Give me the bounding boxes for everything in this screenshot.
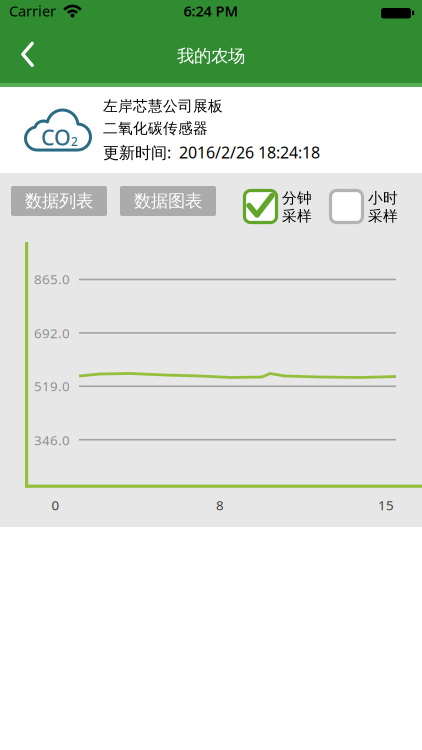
button[interactable]: 数据列表 [11,186,107,216]
button[interactable]: 小时 [330,190,402,223]
staticText: 519.0 [34,377,70,395]
staticText: 865.0 [34,270,70,288]
staticText: 我的农场 [177,45,245,67]
button[interactable]: 数据图表 [120,186,216,216]
staticText: 小时 [368,189,398,207]
staticText: 采样 [368,207,398,225]
staticText: 分钟 [282,189,312,207]
staticText: 6:24 PM [183,1,238,20]
staticText: 15 [378,496,394,514]
staticText: 数据列表 [25,190,93,212]
button[interactable]: Back [0,26,54,83]
staticText: 8 [216,496,224,514]
staticText: 数据图表 [134,190,202,212]
staticText: 346.0 [34,431,70,449]
staticText: 更新时间: 2016/2/26 18:24:18 [103,142,320,163]
staticText: 采样 [282,207,312,225]
staticText: 0 [51,496,59,514]
staticText: Carrier [9,1,56,20]
staticText: 2 [71,133,78,149]
button[interactable]: 分钟 [244,190,316,223]
staticText: 左岸芯慧公司展板 [103,97,223,115]
staticText: 二氧化碳传感器 [103,119,208,137]
staticText: CO [41,123,71,151]
staticText: 692.0 [34,324,70,342]
